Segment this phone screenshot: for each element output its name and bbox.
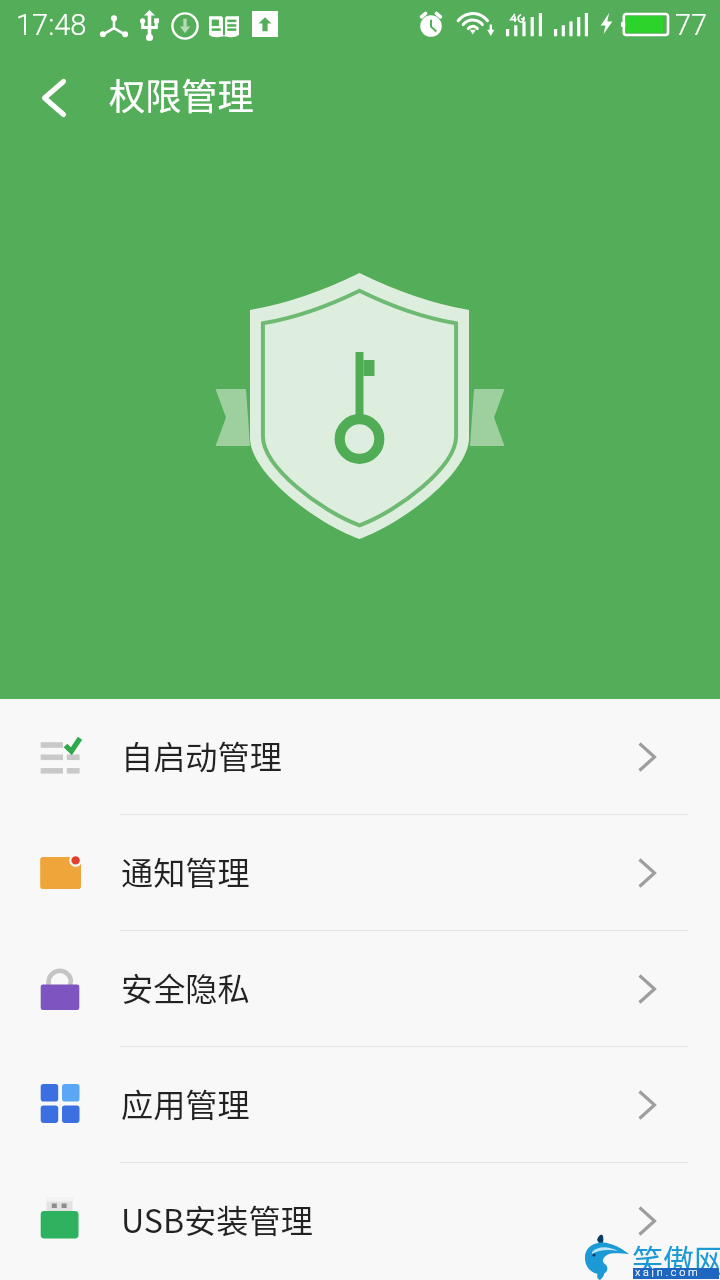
- button[interactable]: Back: [19, 63, 89, 133]
- staticText: 77: [675, 8, 708, 42]
- button[interactable]: 应用管理: [0, 1047, 720, 1162]
- staticText: 安全隐私: [121, 964, 250, 1011]
- button[interactable]: USB安装管理: [0, 1163, 720, 1278]
- staticText: x a j n . c o m: [635, 1266, 698, 1277]
- staticText: 权限管理: [109, 68, 254, 120]
- staticText: 通知管理: [121, 848, 250, 895]
- staticText: 应用管理: [121, 1080, 250, 1127]
- button[interactable]: 安全隐私: [0, 931, 720, 1046]
- staticText: 笑傲网: [632, 1236, 720, 1280]
- button[interactable]: 自启动管理: [0, 699, 720, 814]
- staticText: 17:48: [16, 8, 87, 42]
- staticText: USB安装管理: [121, 1196, 313, 1243]
- staticText: 自启动管理: [121, 732, 282, 779]
- button[interactable]: 通知管理: [0, 815, 720, 930]
